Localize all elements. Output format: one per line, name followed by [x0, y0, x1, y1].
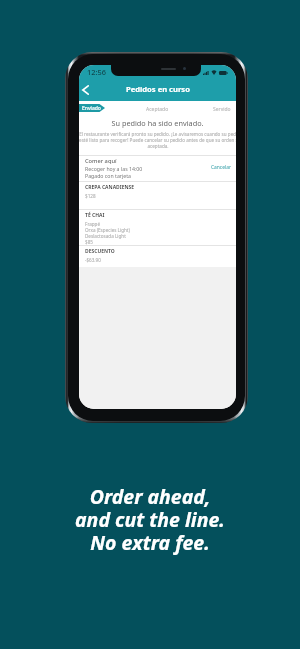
staticText: El restaurante verificará pronto su pedi…: [79, 131, 236, 137]
staticText: Orxa (Especies Light): [85, 227, 130, 233]
staticText: $128: [85, 193, 96, 199]
staticText: Frappé: [85, 221, 101, 227]
staticText: Enviado: [82, 105, 101, 112]
staticText: Cancelar: [211, 164, 231, 171]
staticText: Su pedido ha sido enviado.: [79, 118, 236, 128]
staticText: Pagado con tarjeta: [85, 172, 131, 179]
staticText: DESCUENTO: [85, 248, 115, 255]
staticText: esté listo para recoger! Puede cancelar …: [79, 137, 236, 143]
button[interactable]: Back: [79, 81, 93, 99]
staticText: -$63.90: [85, 257, 101, 263]
staticText: CREPA CANADIENSE: [85, 184, 135, 191]
button[interactable]: Aceptado: [146, 106, 169, 113]
staticText: Pedidos en curso: [126, 84, 190, 94]
staticText: Recoger hoy a las 14:00: [85, 165, 143, 172]
staticText: aceptada.: [147, 143, 169, 149]
staticText: Comer aquí: [85, 157, 117, 165]
staticText: Deslactosada Light: [85, 233, 126, 239]
button[interactable]: Enviado: [79, 104, 105, 112]
button[interactable]: Cancelar: [211, 164, 231, 171]
staticText: Order ahead, and cut the line. No extra …: [0, 483, 300, 556]
staticText: TÉ CHAI: [85, 212, 105, 219]
button[interactable]: Servido: [213, 106, 231, 113]
staticText: 12:56: [87, 67, 106, 77]
staticText: $85: [85, 239, 93, 245]
